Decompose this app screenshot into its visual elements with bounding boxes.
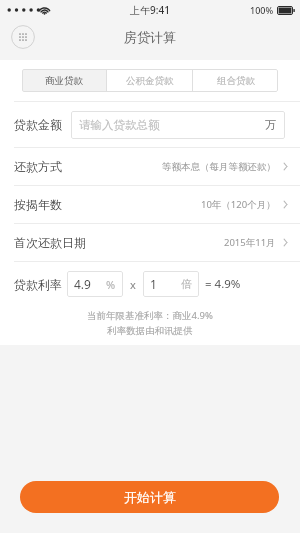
button[interactable]: 开始计算 <box>20 481 279 513</box>
button[interactable]: 请输入贷款总额 <box>79 111 277 139</box>
staticText: 100% <box>250 4 274 16</box>
button[interactable]: 首次还款日期 <box>0 224 300 261</box>
button[interactable]: 4.9 <box>67 271 123 297</box>
staticText: x <box>130 277 136 292</box>
staticText: 组合贷款 <box>217 75 255 87</box>
staticText: 万 <box>265 118 277 132</box>
staticText: 商业贷款 <box>45 75 83 87</box>
button[interactable]: 商业贷款 <box>22 69 106 92</box>
staticText: 倍 <box>181 277 192 291</box>
button[interactable]: 按揭年数 <box>0 186 300 223</box>
button[interactable]: 1 <box>143 271 199 297</box>
button[interactable]: 组合贷款 <box>193 69 278 92</box>
staticText: 贷款金额 <box>14 117 62 132</box>
staticText: 当前年限基准利率：商业4.9% <box>87 309 213 322</box>
staticText: 利率数据由和讯提供 <box>107 325 193 337</box>
staticText: 请输入贷款总额 <box>79 118 265 132</box>
staticText: 开始计算 <box>124 489 176 505</box>
button[interactable]: 还款方式 <box>0 148 300 185</box>
button[interactable]: Menu <box>11 25 35 49</box>
staticText: 首次还款日期 <box>14 235 86 250</box>
staticText: 公积金贷款 <box>126 75 174 87</box>
staticText: 等额本息（每月等额还款） <box>162 161 276 173</box>
staticText: % <box>106 277 116 292</box>
staticText: 4.9 <box>74 276 91 292</box>
staticText: 还款方式 <box>14 159 62 174</box>
button[interactable]: 公积金贷款 <box>107 69 192 92</box>
staticText: 2015年11月 <box>224 236 276 249</box>
staticText: = 4.9% <box>205 276 241 292</box>
staticText: 10年（120个月） <box>201 198 276 211</box>
staticText: 贷款利率 <box>14 277 62 292</box>
staticText: 上午9:41 <box>130 3 170 17</box>
staticText: 房贷计算 <box>124 29 176 45</box>
staticText: 1 <box>150 276 157 292</box>
staticText: 按揭年数 <box>14 197 62 212</box>
